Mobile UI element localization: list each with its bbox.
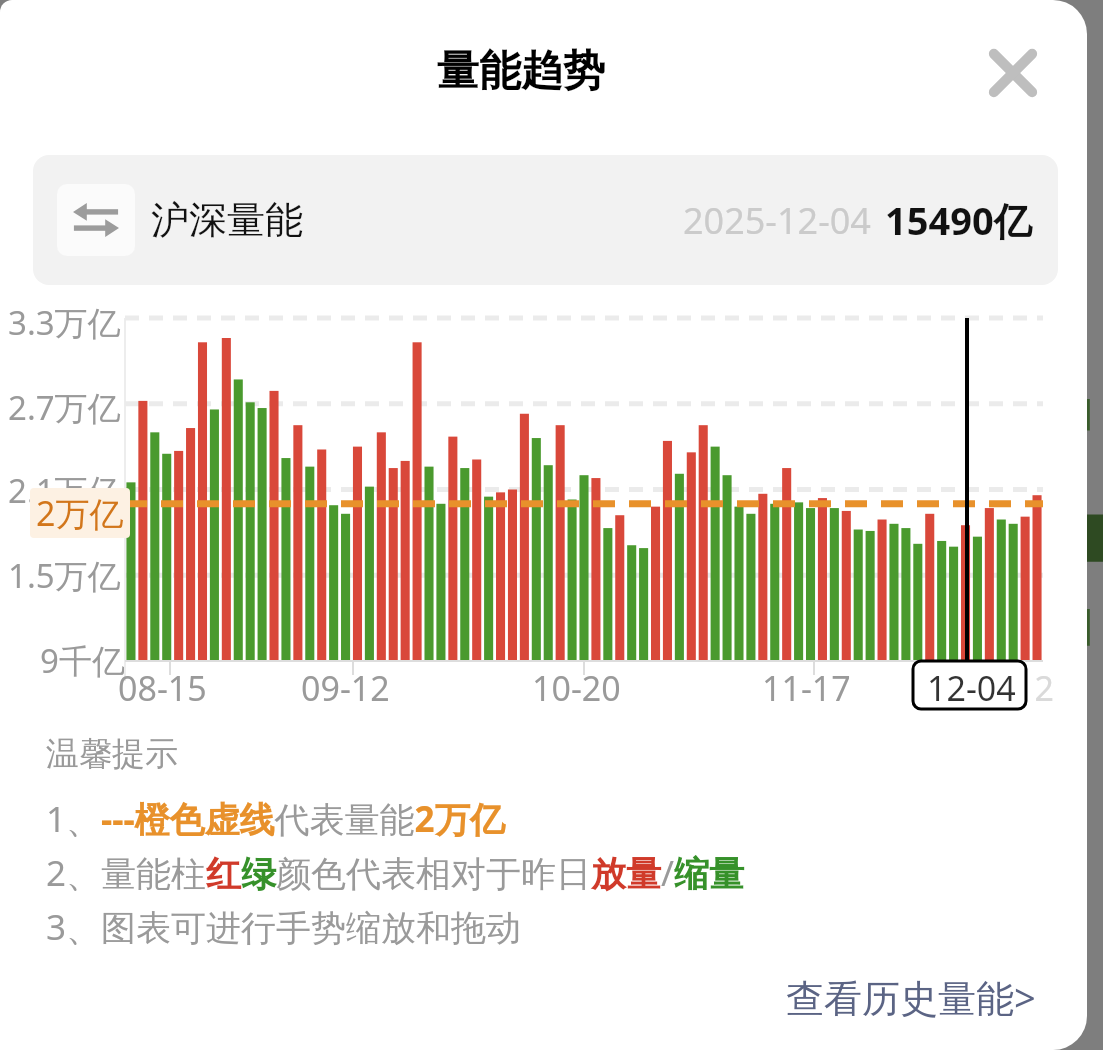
staticText: 温馨提示: [46, 733, 178, 775]
button[interactable]: 查看历史量能>: [780, 965, 1042, 1029]
staticText: 2.7万亿: [8, 385, 121, 430]
staticText: 08-15: [118, 665, 207, 711]
button[interactable]: Close: [984, 44, 1042, 102]
staticText: 10-20: [532, 665, 621, 711]
staticText: 2025-12-04: [683, 196, 871, 245]
staticText: 09-12: [301, 665, 390, 711]
staticText: 12: [935, 665, 974, 711]
staticText: 15490亿: [885, 194, 1032, 246]
staticText: 查看历史量能>: [786, 971, 1036, 1023]
staticText: 2、量能柱红绿颜色代表相对于昨日放量/缩量: [46, 849, 745, 897]
staticText: 2万亿: [36, 490, 124, 536]
staticText: 11-17: [762, 665, 851, 711]
staticText: 3.3万亿: [8, 300, 121, 345]
staticText: 沪深量能: [151, 196, 303, 244]
staticText: 量能趋势: [437, 45, 605, 98]
staticText: 1.5万亿: [8, 553, 121, 598]
staticText: 9千亿: [40, 638, 125, 683]
staticText: 12: [1015, 665, 1054, 711]
staticText: 1、---橙色虚线代表量能2万亿: [46, 795, 505, 843]
staticText: 3、图表可进行手势缩放和拖动: [46, 903, 522, 951]
staticText: 12-04: [927, 665, 1016, 711]
button[interactable]: 沪深量能: [33, 155, 1058, 285]
staticText: 2.1万亿: [8, 468, 121, 513]
